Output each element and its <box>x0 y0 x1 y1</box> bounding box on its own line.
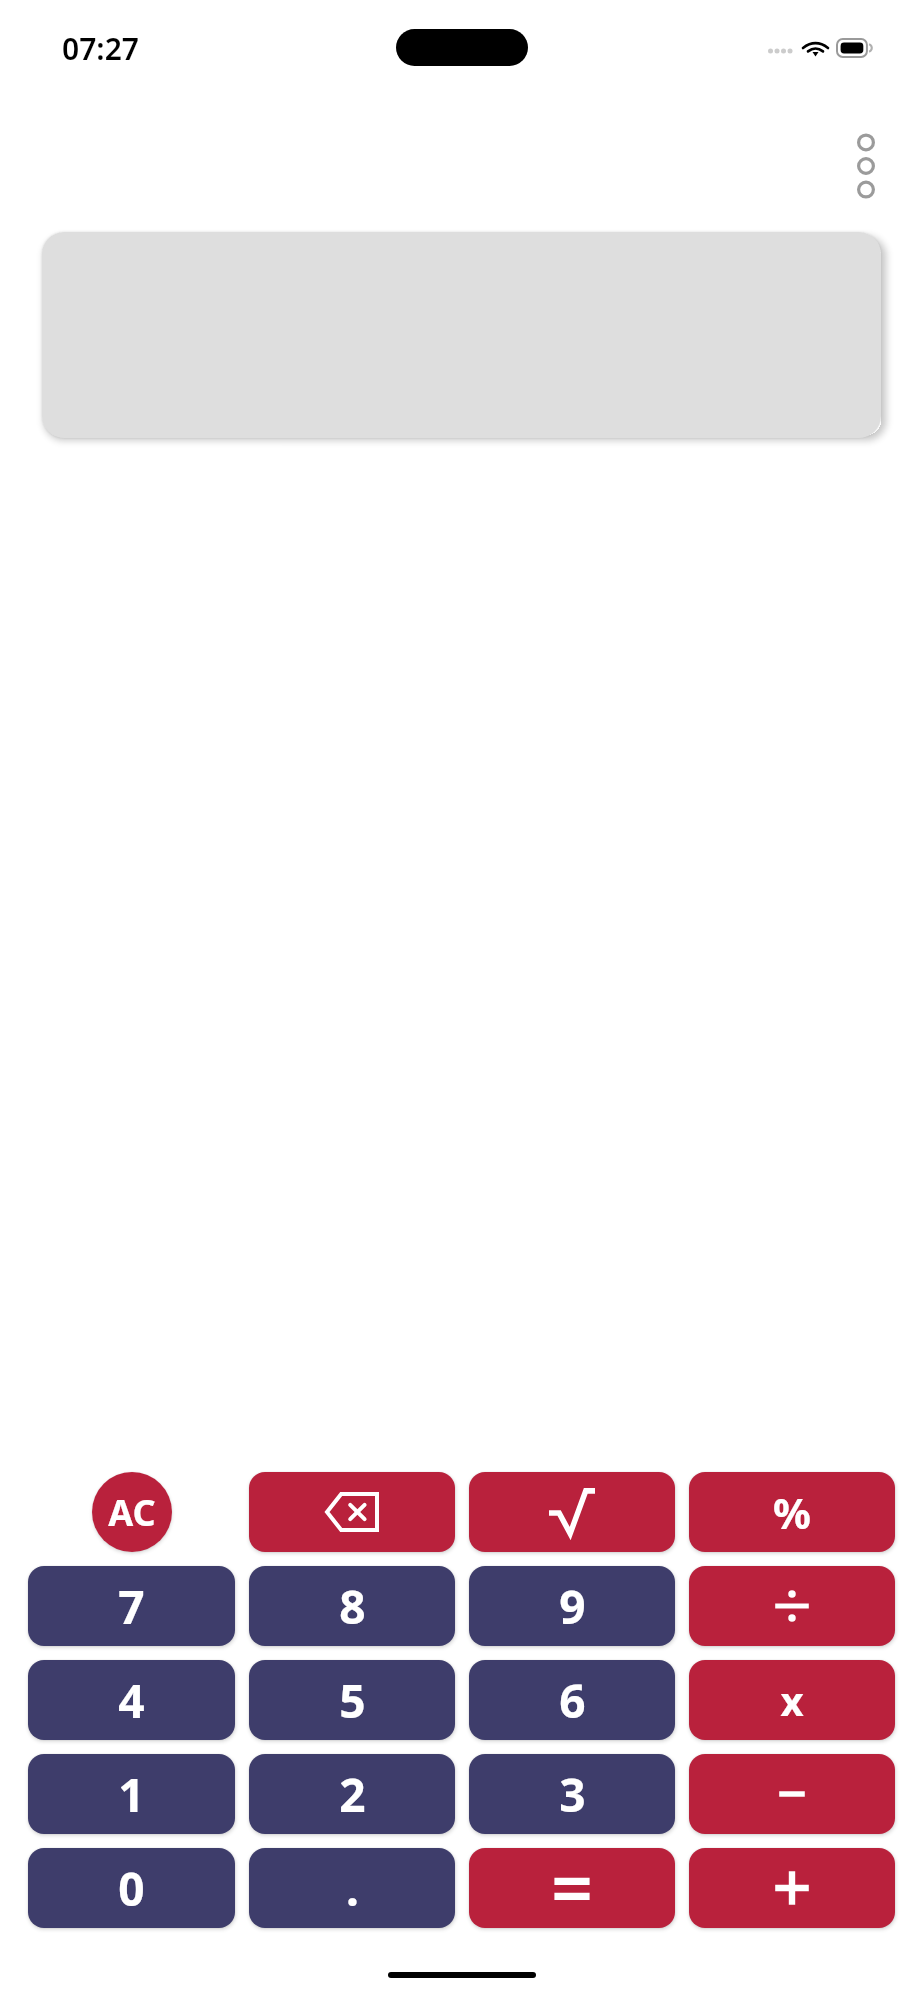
staticText: . <box>346 1857 359 1920</box>
staticText: 7 <box>118 1575 145 1638</box>
staticText: 2 <box>339 1763 366 1826</box>
button[interactable]: Equals <box>469 1848 675 1928</box>
staticText: 07:27 <box>62 28 139 69</box>
button[interactable]: Plus <box>689 1848 895 1928</box>
staticText: x <box>780 1673 804 1727</box>
button[interactable]: 2 <box>249 1754 455 1834</box>
staticText: 0 <box>118 1857 145 1920</box>
button[interactable]: Divide <box>689 1566 895 1646</box>
button[interactable]: 8 <box>249 1566 455 1646</box>
button[interactable]: Backspace <box>249 1472 455 1552</box>
button[interactable]: AC <box>92 1472 172 1552</box>
staticText: 9 <box>559 1575 586 1638</box>
staticText: 1 <box>118 1763 145 1826</box>
staticText: % <box>773 1484 811 1541</box>
button[interactable]: . <box>249 1848 455 1928</box>
staticText: 4 <box>118 1669 145 1732</box>
other: Battery <box>837 39 871 57</box>
button[interactable]: Square root <box>469 1472 675 1552</box>
button[interactable]: 4 <box>28 1660 235 1740</box>
button[interactable]: x <box>689 1660 895 1740</box>
other: Wi-Fi <box>803 38 828 58</box>
staticText: 5 <box>339 1669 366 1732</box>
button[interactable]: 7 <box>28 1566 235 1646</box>
staticText: 8 <box>339 1575 366 1638</box>
button[interactable]: Minus <box>689 1754 895 1834</box>
button[interactable]: 6 <box>469 1660 675 1740</box>
staticText: AC <box>108 1488 156 1537</box>
staticText: 3 <box>559 1763 586 1826</box>
button[interactable]: 1 <box>28 1754 235 1834</box>
button[interactable]: More options <box>843 130 889 202</box>
button[interactable]: 0 <box>28 1848 235 1928</box>
button[interactable]: 3 <box>469 1754 675 1834</box>
button[interactable]: 5 <box>249 1660 455 1740</box>
button[interactable]: 9 <box>469 1566 675 1646</box>
button[interactable]: % <box>689 1472 895 1552</box>
staticText: 6 <box>559 1669 586 1732</box>
